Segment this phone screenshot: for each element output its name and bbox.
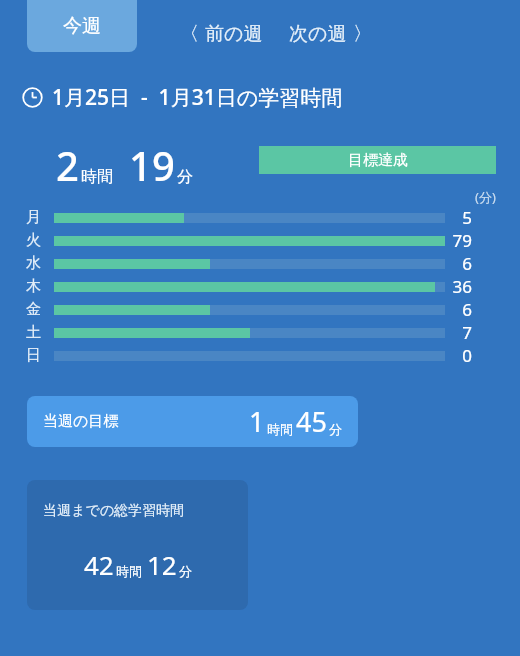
button[interactable]: 次の週 bbox=[287, 18, 374, 50]
staticText: 土 bbox=[26, 323, 41, 342]
staticText: (分) bbox=[475, 188, 496, 206]
staticText: 日 bbox=[26, 346, 41, 365]
staticText: 6 bbox=[462, 252, 472, 275]
button[interactable]: 当週の目標 bbox=[27, 396, 358, 447]
button[interactable]: 今週 bbox=[27, 0, 137, 52]
staticText: 5 bbox=[462, 206, 472, 229]
staticText: 次の週 bbox=[289, 22, 347, 46]
staticText: 目標達成 bbox=[348, 151, 408, 170]
staticText: 時間 bbox=[81, 167, 113, 187]
button[interactable]: 当週までの総学習時間 bbox=[27, 480, 248, 610]
staticText: 時間 bbox=[267, 421, 293, 437]
staticText: 分 bbox=[179, 563, 192, 579]
staticText: 金 bbox=[26, 300, 41, 319]
staticText: 前の週 bbox=[205, 22, 263, 46]
staticText: 当週の目標 bbox=[43, 412, 119, 431]
staticText: 19 bbox=[129, 138, 175, 192]
staticText: 42 bbox=[84, 547, 114, 582]
staticText: 当週までの総学習時間 bbox=[43, 502, 184, 520]
staticText: 1 bbox=[249, 403, 265, 440]
staticText: 12 bbox=[147, 547, 177, 582]
staticText: 1月25日 - 1月31日の学習時間 bbox=[52, 83, 343, 112]
staticText: 79 bbox=[452, 229, 472, 252]
staticText: 〉 bbox=[353, 22, 372, 46]
staticText: 時間 bbox=[116, 563, 142, 579]
staticText: 火 bbox=[26, 231, 41, 250]
staticText: 木 bbox=[26, 277, 41, 296]
staticText: 6 bbox=[462, 298, 472, 321]
staticText: 分 bbox=[177, 167, 193, 187]
staticText: 7 bbox=[462, 321, 472, 344]
staticText: 月 bbox=[26, 208, 41, 227]
staticText: 45 bbox=[296, 403, 327, 440]
button[interactable]: 〈 bbox=[178, 18, 265, 50]
staticText: 0 bbox=[462, 344, 472, 367]
other: Study time period bbox=[22, 87, 43, 108]
staticText: 36 bbox=[452, 275, 472, 298]
staticText: 今週 bbox=[63, 14, 101, 38]
staticText: 分 bbox=[329, 421, 342, 437]
staticText: 水 bbox=[26, 254, 41, 273]
staticText: 2 bbox=[56, 138, 79, 192]
staticText: 〈 bbox=[180, 22, 199, 46]
